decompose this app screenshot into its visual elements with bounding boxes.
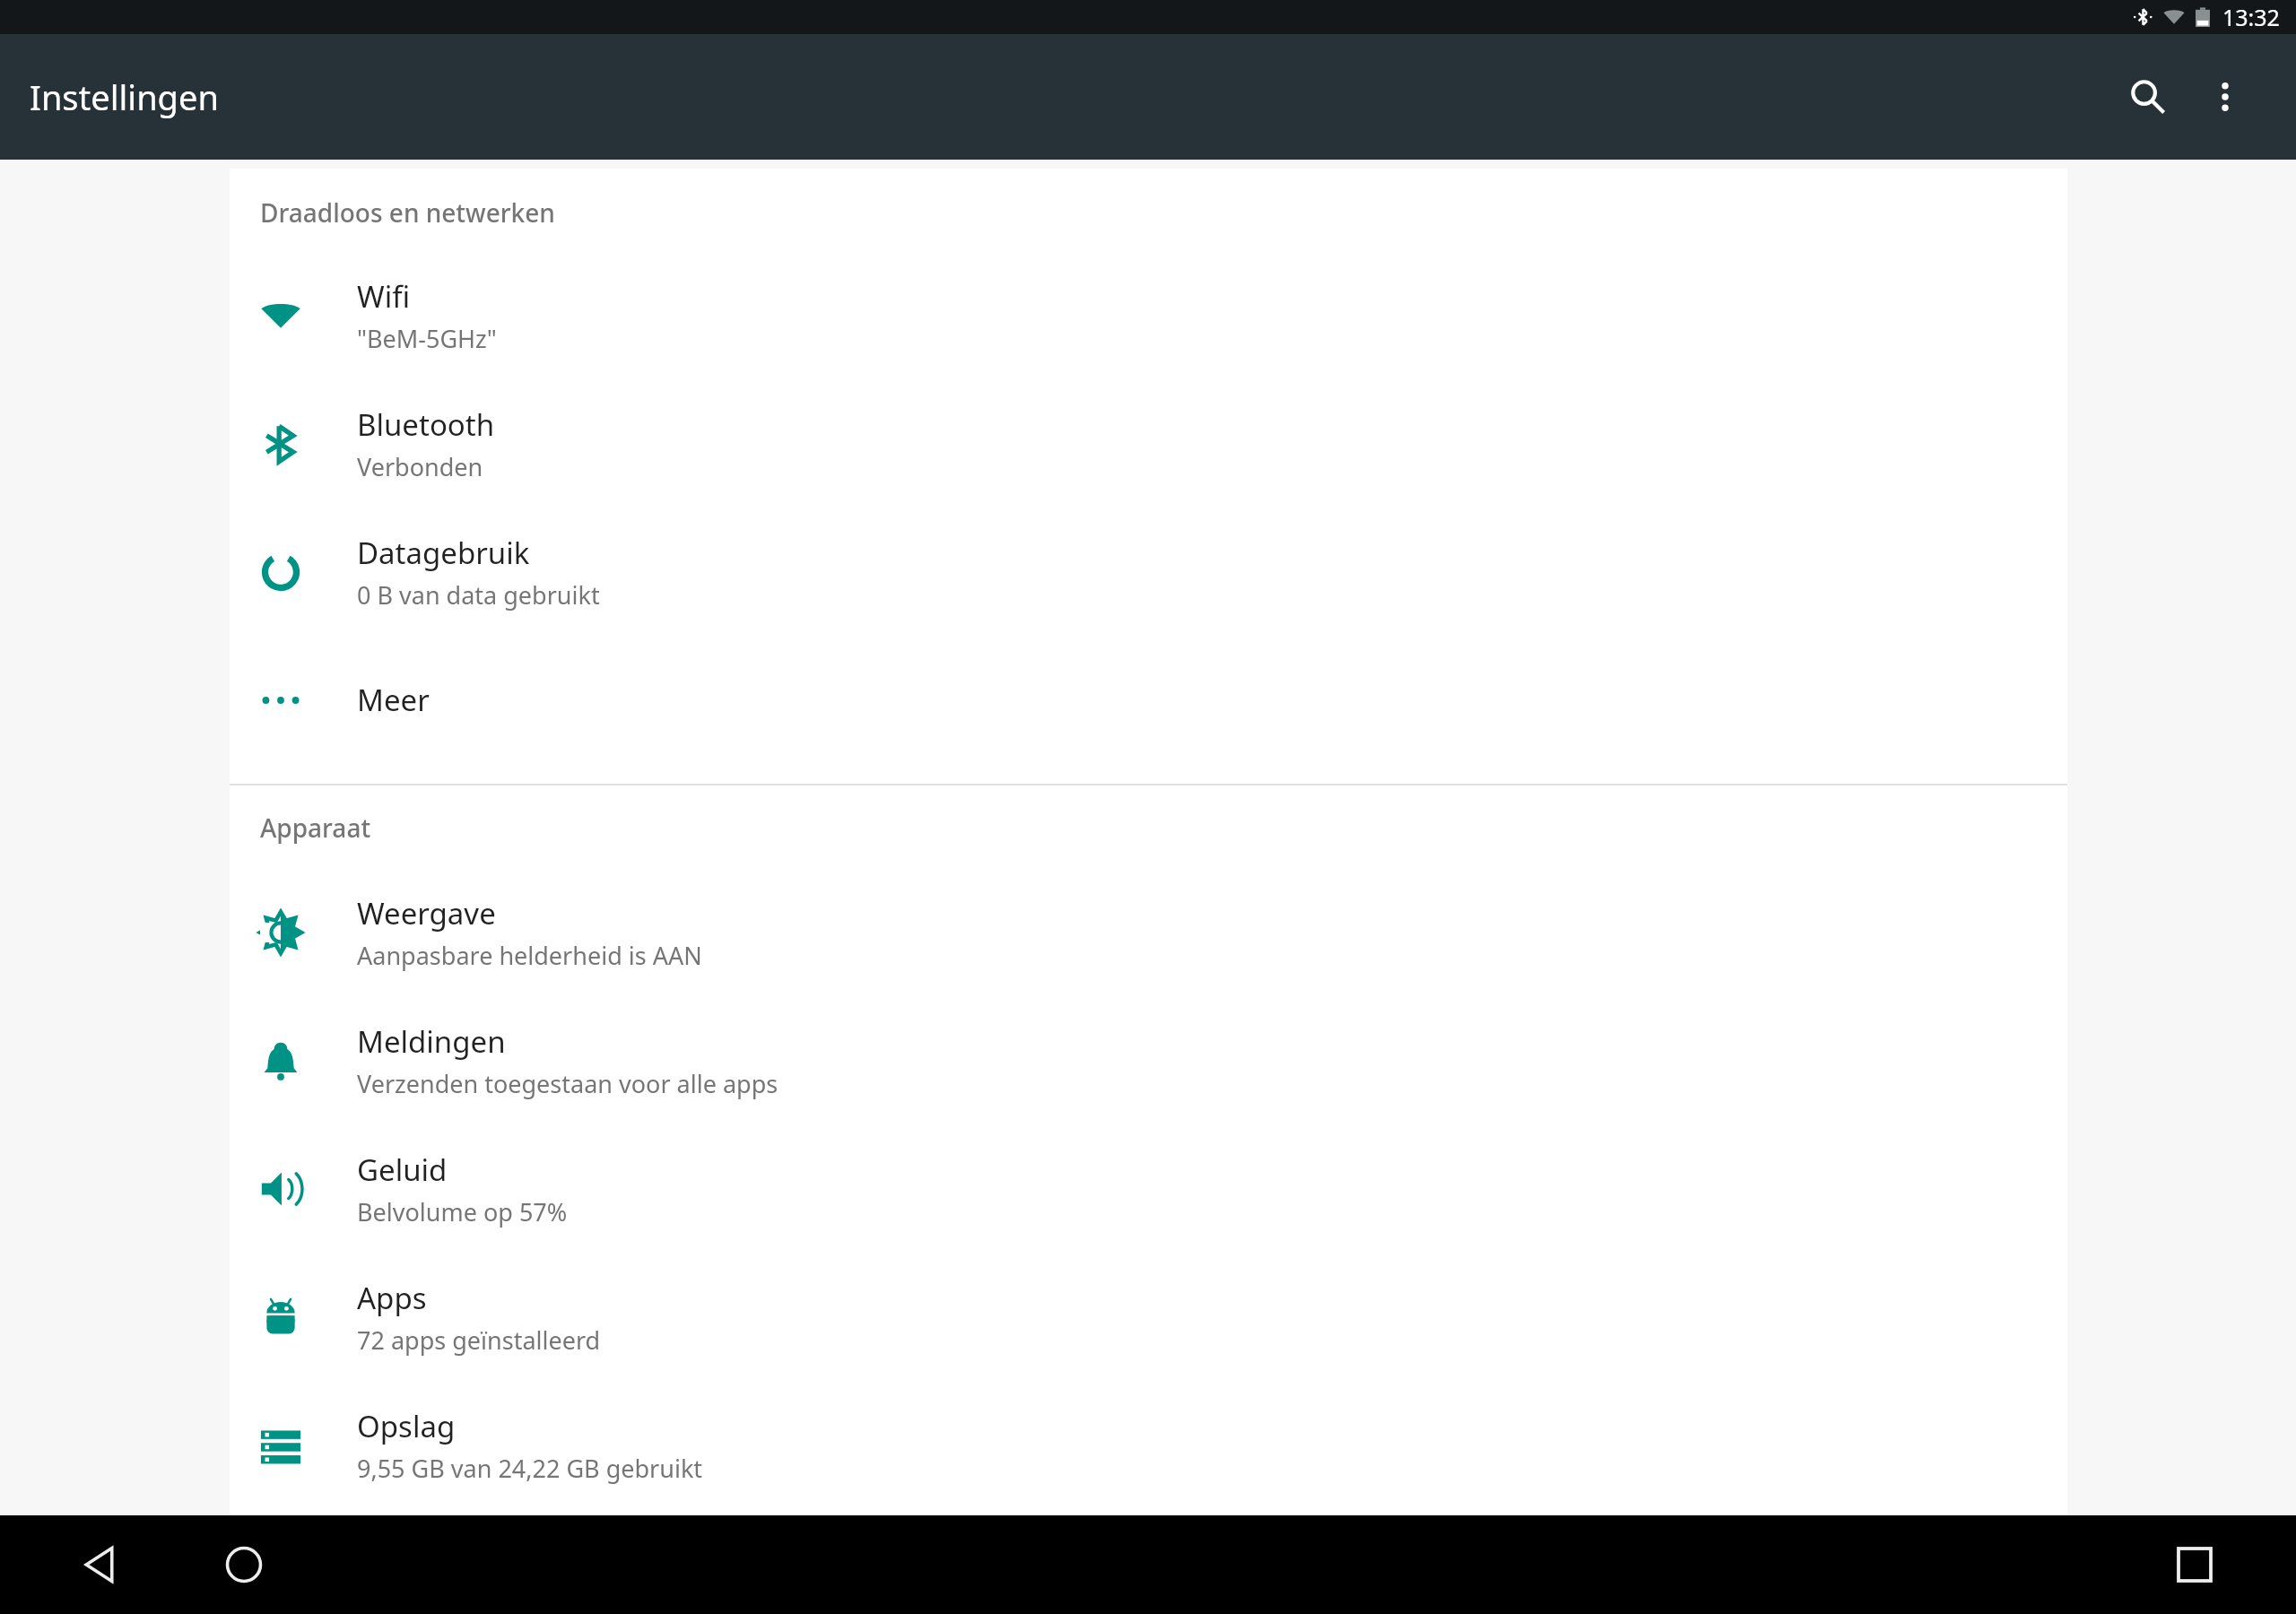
button[interactable]: Weergave xyxy=(230,868,2067,996)
staticText: Datagebruik xyxy=(357,533,530,573)
staticText: Opslag xyxy=(357,1406,456,1446)
staticText: Instellingen xyxy=(30,74,219,120)
staticText: Aanpasbare helderheid is AAN xyxy=(357,939,702,972)
staticText: 72 apps geïnstalleerd xyxy=(357,1323,601,1357)
button[interactable]: Wifi xyxy=(230,251,2067,379)
button[interactable]: More options xyxy=(2187,58,2264,135)
staticText: 9,55 GB van 24,22 GB gebruikt xyxy=(357,1452,703,1485)
button[interactable]: Meer xyxy=(230,636,2067,764)
button[interactable]: Home xyxy=(207,1528,281,1601)
button[interactable]: Bluetooth xyxy=(230,379,2067,508)
staticText: Draadloos en netwerken xyxy=(260,195,555,230)
staticText: Verbonden xyxy=(357,450,483,483)
staticText: 13:32 xyxy=(2222,2,2280,32)
staticText: Meldingen xyxy=(357,1021,506,1062)
staticText: Geluid xyxy=(357,1150,448,1190)
button[interactable]: Geluid xyxy=(230,1124,2067,1253)
button[interactable]: Recent apps xyxy=(2158,1528,2231,1601)
staticText: Apparaat xyxy=(260,811,371,845)
staticText: Meer xyxy=(357,680,430,720)
staticText: Bluetooth xyxy=(357,404,495,445)
staticText: Weergave xyxy=(357,893,496,933)
button[interactable]: Apps xyxy=(230,1253,2067,1381)
staticText: Verzenden toegestaan voor alle apps xyxy=(357,1067,778,1100)
button[interactable]: Search xyxy=(2109,58,2187,135)
staticText: "BeM-5GHz" xyxy=(357,322,497,355)
button[interactable]: Back xyxy=(65,1528,138,1601)
button[interactable]: Datagebruik xyxy=(230,508,2067,636)
button[interactable]: Opslag xyxy=(230,1381,2067,1509)
staticText: Belvolume op 57% xyxy=(357,1195,568,1228)
staticText: Wifi xyxy=(357,276,411,317)
button[interactable]: Meldingen xyxy=(230,996,2067,1124)
staticText: Apps xyxy=(357,1278,427,1318)
staticText: 0 B van data gebruikt xyxy=(357,578,600,612)
